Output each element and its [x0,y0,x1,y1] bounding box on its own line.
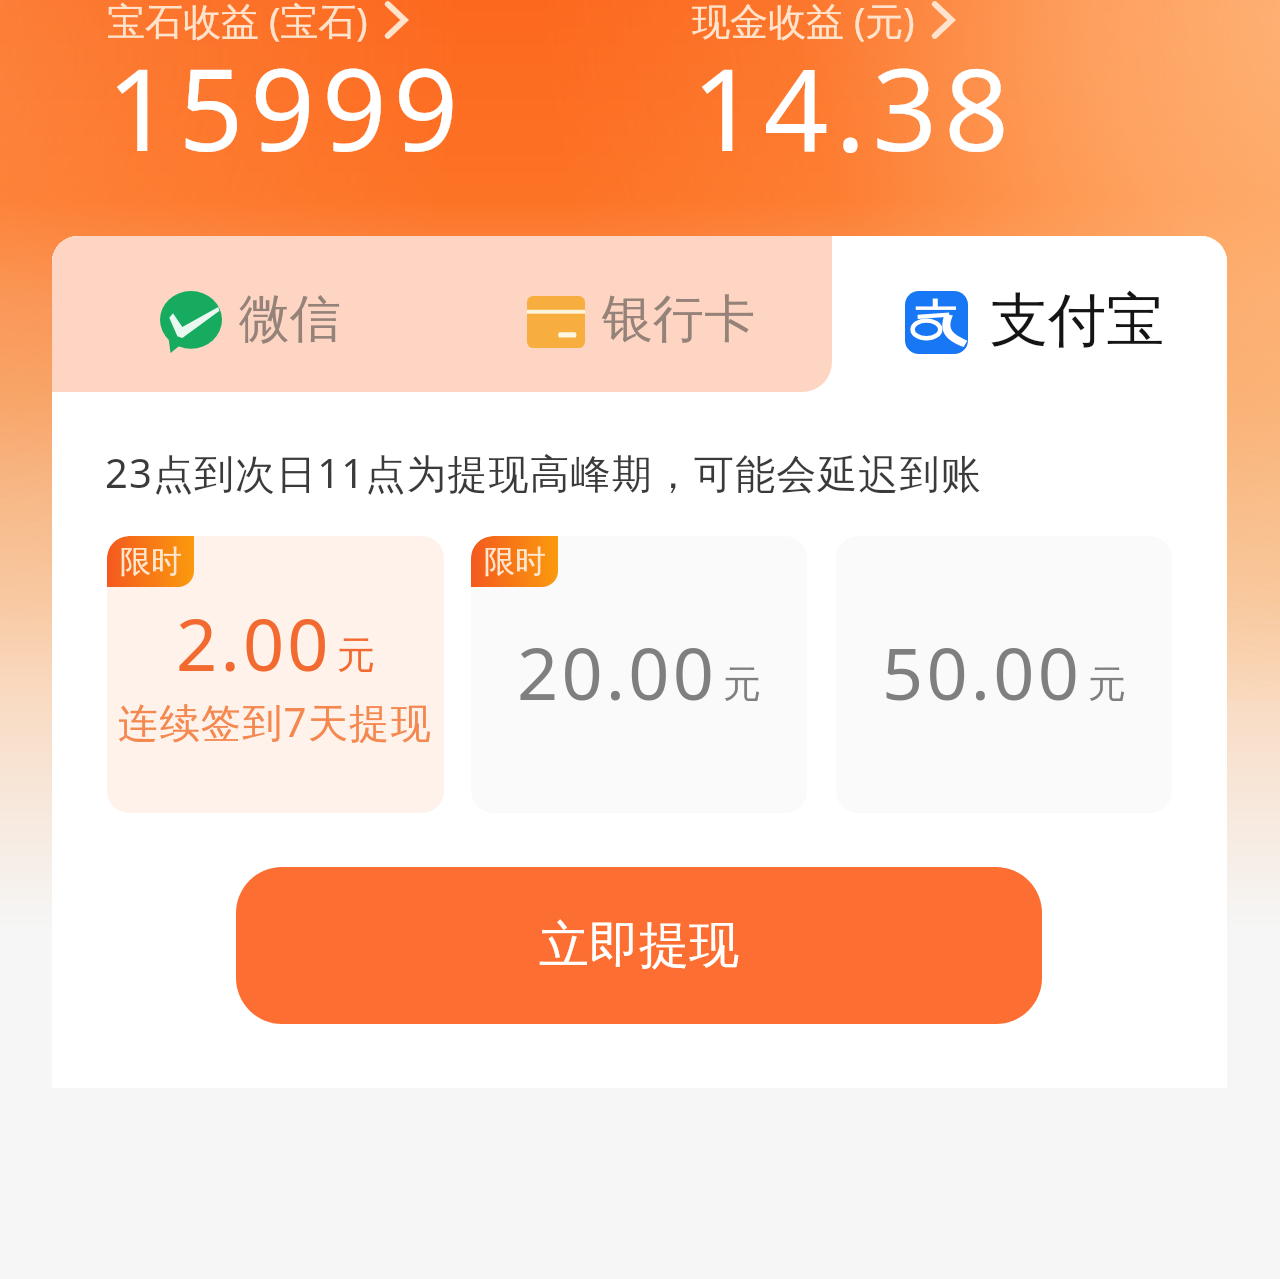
staticText: 元 [1088,660,1126,708]
staticText: 支付宝 [990,284,1164,357]
staticText: 银行卡 [602,287,755,351]
staticText: 立即提现 [539,914,739,977]
button[interactable]: 2.00 [107,536,444,813]
staticText: 微信 [239,287,341,351]
button[interactable]: 宝石收益 (宝石) 详情 [107,0,466,200]
button[interactable]: 支付宝 [831,236,1227,392]
staticText: 元 [723,660,761,708]
button[interactable]: 20.00 [471,536,807,813]
staticText: 限时 [484,542,546,581]
staticText: 限时 [120,542,182,581]
button[interactable]: 银行卡 [419,236,831,392]
button[interactable]: 现金收益 (元) 详情 [692,0,1016,200]
staticText: 现金收益 (元) [692,0,915,46]
staticText: 50.00 [882,623,1083,721]
button[interactable]: 微信 [52,236,419,392]
staticText: 15999 [107,30,466,184]
button[interactable]: 立即提现 [236,867,1042,1024]
staticText: 连续签到7天提现 [118,694,433,749]
button[interactable]: 50.00 [836,536,1172,813]
staticText: 元 [337,631,375,679]
staticText: 2.00 [176,594,332,692]
staticText: 14.38 [692,30,1016,184]
staticText: 20.00 [517,623,718,721]
staticText: 宝石收益 (宝石) [107,0,368,46]
staticText: 23点到次日11点为提现高峰期，可能会延迟到账 [105,445,982,500]
